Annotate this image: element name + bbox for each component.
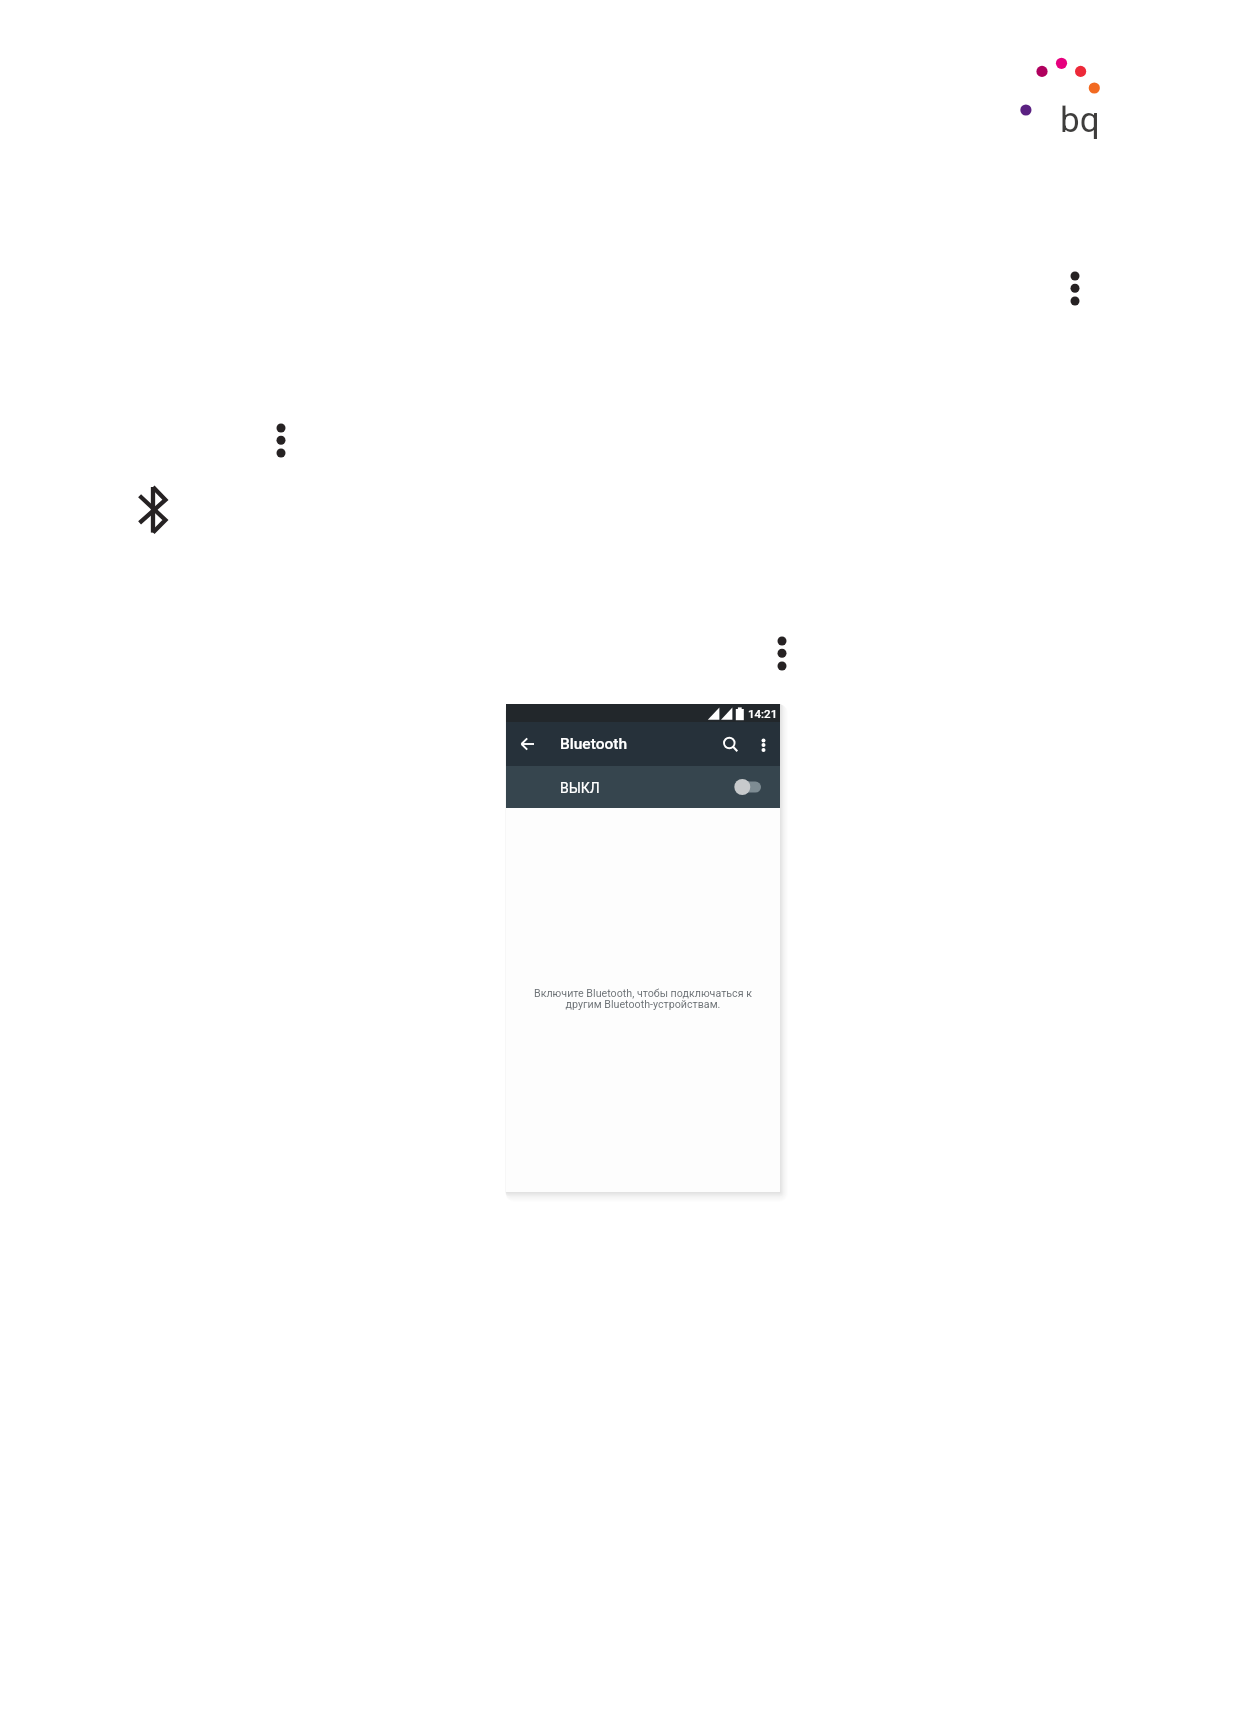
button[interactable]: More options <box>751 728 776 760</box>
button[interactable]: ВЫКЛ <box>506 766 780 808</box>
staticText: Bluetooth <box>560 735 628 753</box>
staticText: ВЫКЛ <box>560 780 600 796</box>
staticText: 14:21 <box>748 707 778 720</box>
button[interactable]: More options <box>1065 267 1085 309</box>
staticText: bq <box>1060 100 1100 141</box>
staticText: Включите Bluetooth, чтобы подключаться к… <box>534 987 752 1011</box>
button[interactable]: Bluetooth off <box>732 775 766 799</box>
button[interactable]: Search <box>715 729 747 761</box>
button[interactable]: Back <box>514 731 540 757</box>
button[interactable]: More options <box>271 419 291 461</box>
button[interactable]: Bluetooth <box>136 484 171 536</box>
button[interactable]: More options <box>772 632 792 674</box>
